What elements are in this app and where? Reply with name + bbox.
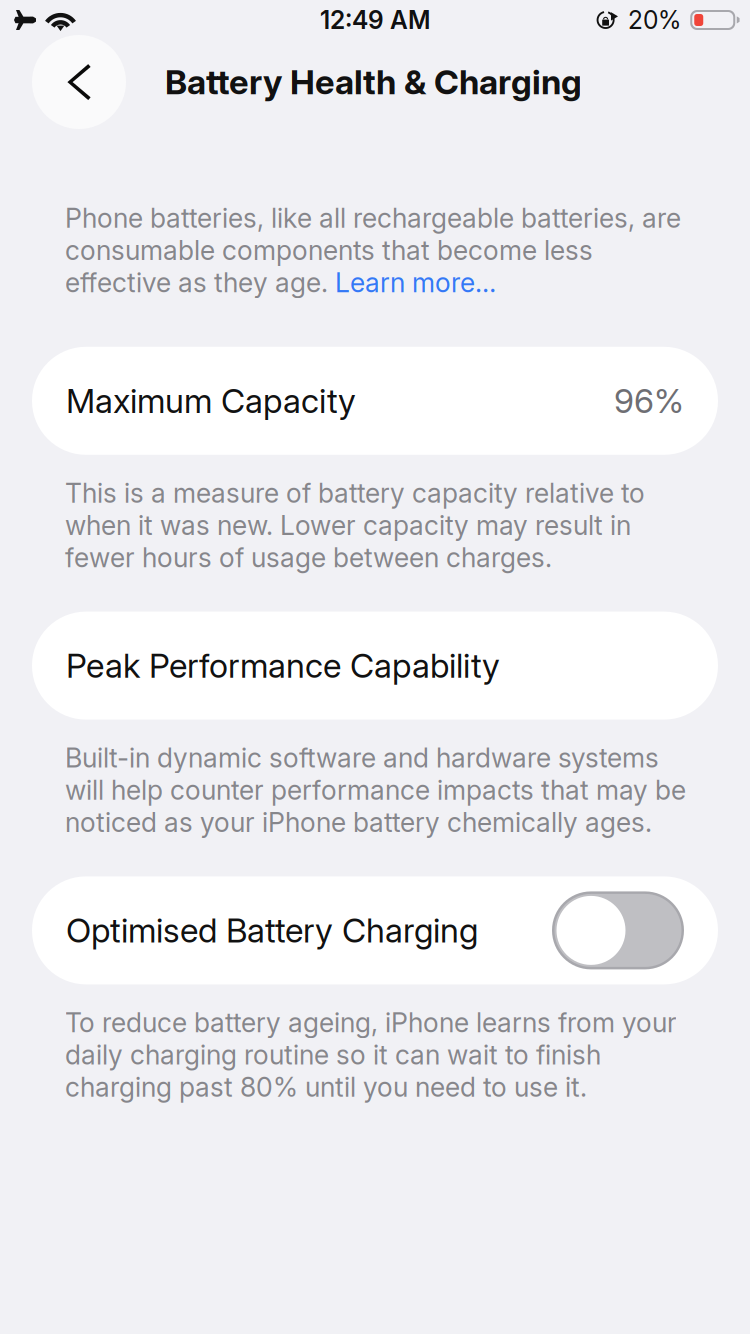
staticText: 20% bbox=[628, 5, 681, 35]
staticText: Phone batteries, like all rechargeable b… bbox=[65, 202, 681, 299]
staticText: Built-in dynamic software and hardware s… bbox=[65, 742, 686, 838]
staticText: Battery Health & Charging bbox=[165, 61, 582, 102]
staticText: To reduce battery ageing, iPhone learns … bbox=[65, 1006, 677, 1103]
staticText: 96% bbox=[614, 381, 684, 421]
staticText: This is a measure of battery capacity re… bbox=[65, 477, 645, 574]
staticText: Peak Performance Capability bbox=[66, 645, 500, 686]
button[interactable]: Optimised Battery Charging bbox=[32, 876, 718, 984]
staticText: Optimised Battery Charging bbox=[66, 910, 478, 950]
staticText: Maximum Capacity bbox=[66, 381, 356, 421]
button[interactable]: Back bbox=[32, 35, 126, 129]
button[interactable]: Peak Performance Capability bbox=[32, 612, 718, 720]
staticText: 12:49 AM bbox=[320, 5, 430, 35]
button[interactable]: Maximum Capacity bbox=[32, 347, 718, 455]
